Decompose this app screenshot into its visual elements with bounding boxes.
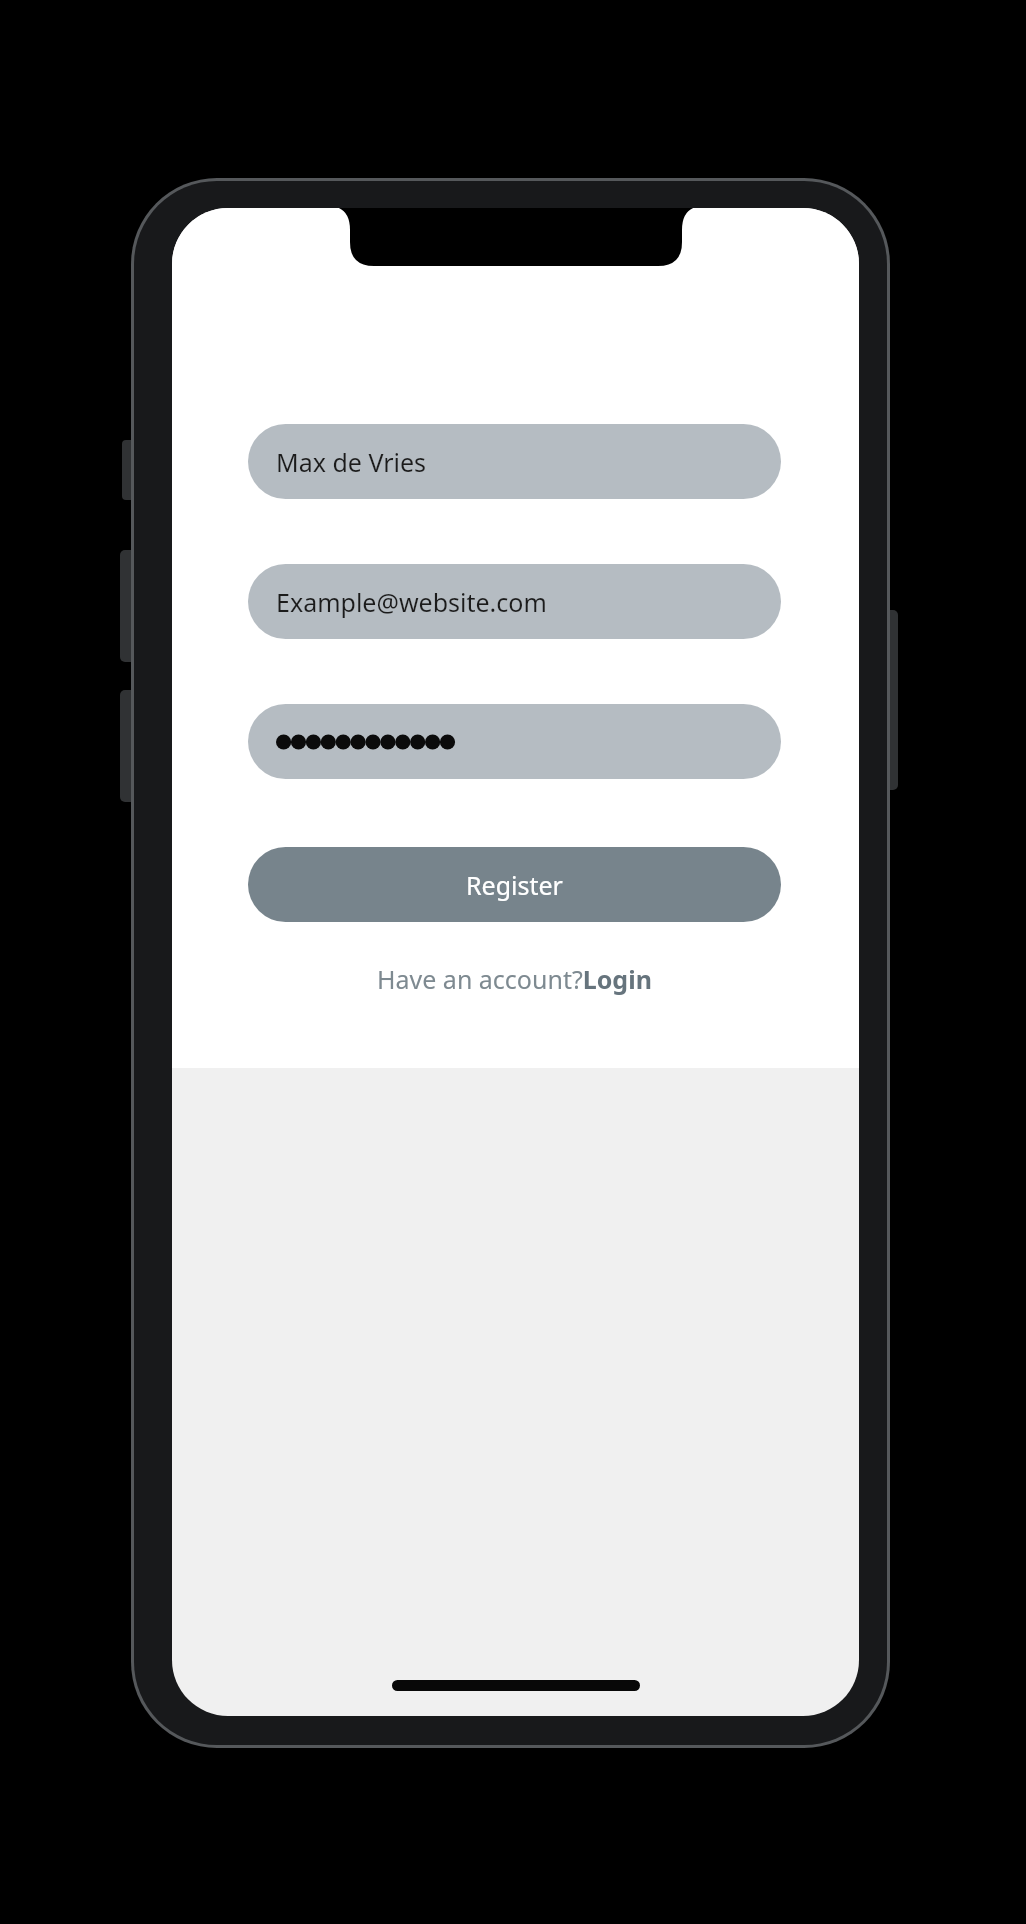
button[interactable]: Max de Vries (248, 424, 781, 499)
other: Volume down (120, 690, 132, 802)
button[interactable]: Example@website.com (248, 564, 781, 639)
button[interactable]: Register (248, 847, 781, 922)
staticText: Max de Vries (276, 445, 427, 479)
staticText: Register (466, 868, 563, 902)
staticText: Example@website.com (276, 585, 547, 619)
other: Volume up (120, 550, 132, 662)
staticText: Have an account?Login (377, 962, 652, 996)
other: Ring silent switch (122, 440, 132, 500)
other: Password (276, 726, 456, 758)
button[interactable]: Password (248, 704, 781, 779)
other: Power (886, 610, 898, 790)
button[interactable]: Have an account?Login (371, 956, 658, 1002)
